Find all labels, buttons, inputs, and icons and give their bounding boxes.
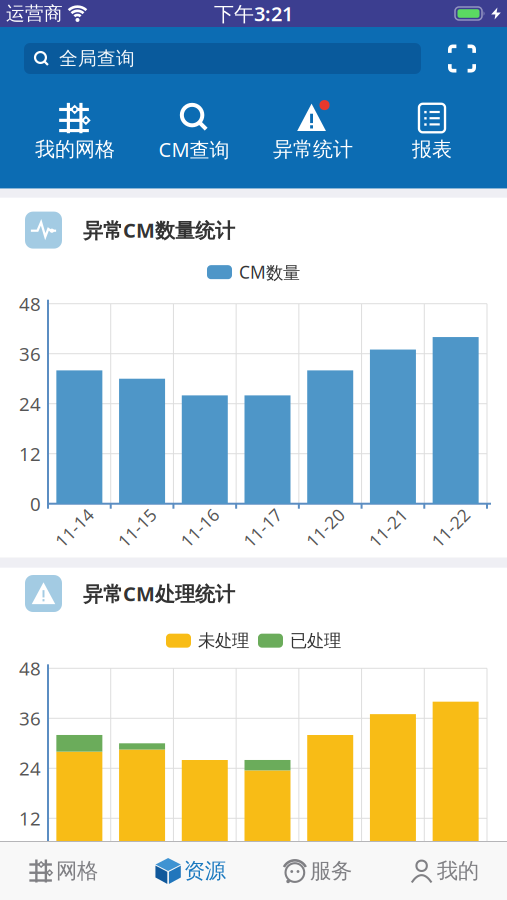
button[interactable]: CM查询 xyxy=(134,100,253,163)
button[interactable]: 资源 xyxy=(127,845,254,897)
staticText: 11-16 xyxy=(177,516,223,539)
staticText: 未处理 xyxy=(198,630,249,651)
staticText: 48 xyxy=(19,291,41,316)
button[interactable]: 我的 xyxy=(380,845,507,897)
button[interactable]: 服务 xyxy=(253,845,380,897)
staticText: 网格 xyxy=(56,858,98,884)
staticText: CM查询 xyxy=(158,136,229,163)
staticText: 我的网格 xyxy=(35,137,115,162)
staticText: 12 xyxy=(19,441,41,466)
button[interactable]: 全局查询 xyxy=(24,43,421,74)
staticText: 11-21 xyxy=(365,516,411,539)
button[interactable]: 我的网格 xyxy=(15,101,134,162)
staticText: 异常统计 xyxy=(273,137,353,162)
staticText: 运营商 xyxy=(6,2,63,25)
button[interactable]: 网格 xyxy=(0,845,127,897)
staticText: 48 xyxy=(19,656,41,681)
staticText: 11-15 xyxy=(114,516,160,539)
staticText: 0 xyxy=(30,491,41,516)
staticText: 11-17 xyxy=(239,516,285,539)
staticText: 资源 xyxy=(184,858,226,884)
staticText: 已处理 xyxy=(290,630,341,651)
staticText: CM数量 xyxy=(239,261,300,284)
staticText: 异常CM处理统计 xyxy=(83,580,235,607)
staticText: 服务 xyxy=(310,858,352,884)
staticText: 异常CM数量统计 xyxy=(83,217,235,243)
staticText: 36 xyxy=(19,341,41,366)
staticText: 0 xyxy=(30,856,41,881)
staticText: 11-14 xyxy=(51,516,97,539)
button[interactable]: 异常统计 xyxy=(253,101,372,162)
staticText: 报表 xyxy=(412,137,452,162)
button[interactable]: 扫一扫 xyxy=(448,44,476,72)
staticText: 下午3:21 xyxy=(214,0,293,27)
button[interactable]: 报表 xyxy=(372,101,491,162)
staticText: 我的 xyxy=(437,858,479,884)
staticText: 24 xyxy=(19,756,41,781)
staticText: 11-22 xyxy=(428,516,474,539)
staticText: 36 xyxy=(19,706,41,731)
staticText: 24 xyxy=(19,391,41,416)
staticText: 全局查询 xyxy=(59,47,135,70)
staticText: 12 xyxy=(19,806,41,831)
staticText: 11-20 xyxy=(302,516,348,539)
